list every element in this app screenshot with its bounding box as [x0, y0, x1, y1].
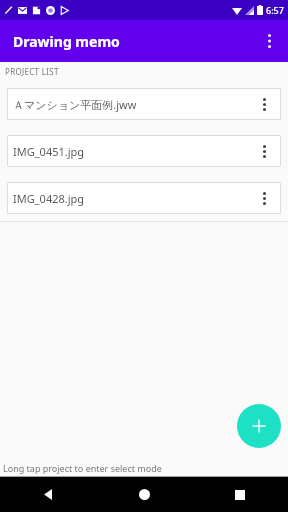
- button[interactable]: Item options: [252, 139, 276, 163]
- button[interactable]: Home: [96, 477, 192, 512]
- staticText: Drawing memo: [13, 32, 120, 51]
- staticText: Long tap project to enter select mode: [3, 462, 162, 474]
- button[interactable]: Add project: [237, 404, 281, 448]
- button[interactable]: Ａマンション平面例.jww: [7, 88, 281, 120]
- button[interactable]: Back: [0, 477, 96, 512]
- button[interactable]: Item options: [252, 92, 276, 116]
- staticText: PROJECT LIST: [5, 66, 59, 77]
- button[interactable]: Item options: [252, 186, 276, 210]
- staticText: Ａマンション平面例.jww: [13, 97, 137, 112]
- staticText: IMG_0428.jpg: [13, 191, 85, 206]
- button[interactable]: More options: [256, 28, 282, 54]
- button[interactable]: Recent apps: [192, 477, 288, 512]
- staticText: 6:57: [266, 4, 284, 16]
- button[interactable]: IMG_0428.jpg: [7, 182, 281, 214]
- button[interactable]: IMG_0451.jpg: [7, 135, 281, 167]
- staticText: IMG_0451.jpg: [13, 144, 85, 159]
